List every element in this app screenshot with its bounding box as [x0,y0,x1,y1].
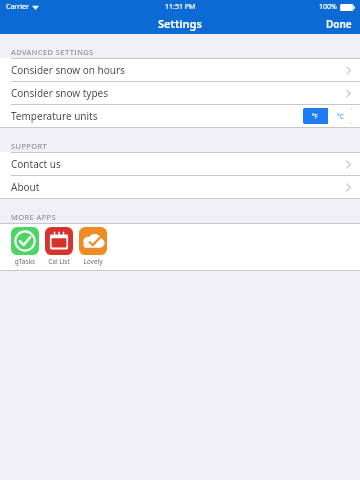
staticText: SUPPORT [11,141,48,151]
button[interactable]: gTasks [10,227,40,266]
button[interactable]: Lovely [78,227,108,266]
staticText: Lovely [78,257,108,266]
button[interactable]: Cal List [44,227,74,266]
staticText: 11:51 PM [165,2,196,12]
staticText: gTasks [10,257,40,266]
button[interactable]: °F [303,108,327,124]
staticText: About [11,180,40,194]
staticText: Done [326,17,352,31]
staticText: Settings [158,16,202,31]
staticText: Cal List [44,257,74,266]
button[interactable]: Consider snow types [0,82,360,104]
staticText: MORE APPS [11,212,57,222]
staticText: Temperature units [11,109,98,123]
staticText: Contact us [11,157,61,171]
button[interactable]: Contact us [0,153,360,175]
staticText: Carrier [6,2,29,12]
button[interactable]: About [0,176,360,198]
staticText: Consider snow on hours [11,63,125,77]
staticText: ADVANCED SETTINGS [11,47,94,57]
staticText: °F [312,112,319,121]
staticText: Consider snow types [11,86,109,100]
staticText: °C [337,112,344,121]
button[interactable]: °C [328,108,352,124]
staticText: 100% [319,2,337,12]
button[interactable]: Consider snow on hours [0,59,360,81]
button[interactable]: Done [318,15,360,33]
